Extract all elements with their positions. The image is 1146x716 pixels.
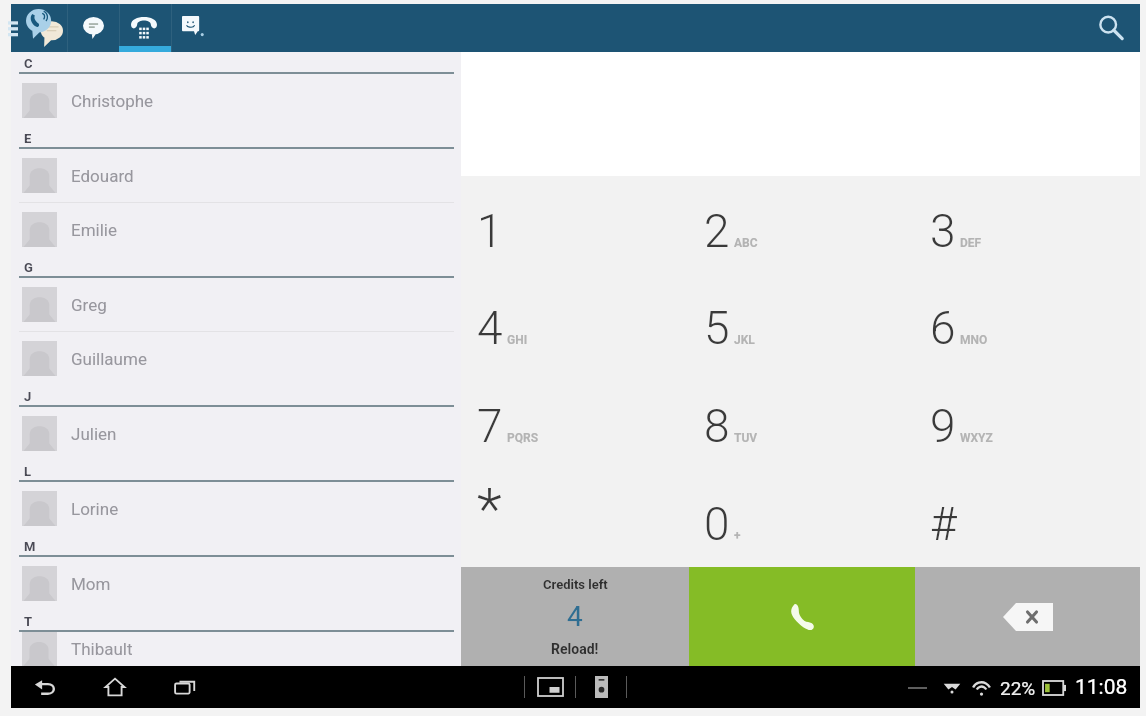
button[interactable]: Recents bbox=[165, 667, 205, 707]
button[interactable]: 1 bbox=[461, 176, 688, 273]
staticText: J bbox=[24, 389, 32, 404]
staticText: 2 bbox=[704, 204, 730, 258]
button[interactable]: 3 bbox=[914, 176, 1140, 273]
button[interactable]: Stickers bbox=[171, 4, 223, 52]
button[interactable]: Menu bbox=[11, 4, 21, 52]
staticText: 1 bbox=[477, 204, 503, 258]
button[interactable]: 0 bbox=[688, 469, 914, 567]
button[interactable]: Thibault bbox=[11, 632, 461, 666]
staticText: Guillaume bbox=[71, 349, 147, 369]
staticText: 22% bbox=[1000, 677, 1036, 699]
button[interactable]: * bbox=[461, 469, 688, 567]
button[interactable]: Call bbox=[689, 567, 915, 666]
staticText: Lorine bbox=[71, 499, 119, 519]
staticText: Greg bbox=[71, 295, 107, 315]
staticText: 9 bbox=[930, 399, 956, 453]
button[interactable]: 9 bbox=[914, 371, 1140, 469]
staticText: Thibault bbox=[71, 639, 133, 659]
staticText: C bbox=[24, 56, 33, 71]
staticText: L bbox=[24, 464, 32, 479]
staticText: Credits left bbox=[543, 577, 608, 592]
staticText: WXYZ bbox=[960, 431, 993, 445]
staticText: Mom bbox=[71, 574, 111, 594]
button[interactable]: Edouard bbox=[11, 149, 461, 202]
staticText: 7 bbox=[477, 399, 503, 453]
button[interactable]: Guillaume bbox=[11, 332, 461, 385]
staticText: Emilie bbox=[71, 220, 117, 240]
staticText: 0 bbox=[704, 497, 730, 551]
button[interactable]: Backspace bbox=[915, 567, 1140, 666]
staticText: PQRS bbox=[507, 431, 539, 445]
staticText: 6 bbox=[930, 301, 956, 355]
staticText: 4 bbox=[477, 301, 503, 355]
staticText: 5 bbox=[704, 301, 730, 355]
staticText: # bbox=[930, 497, 957, 551]
button[interactable]: Apps bbox=[587, 673, 615, 701]
button[interactable]: Keypad bbox=[119, 4, 171, 52]
button[interactable]: 2 bbox=[688, 176, 914, 273]
button[interactable]: Search bbox=[1082, 4, 1140, 52]
staticText: Julien bbox=[71, 424, 117, 444]
staticText: G bbox=[24, 260, 33, 275]
button[interactable]: Credits left bbox=[461, 567, 689, 666]
button[interactable]: Greg bbox=[11, 278, 461, 331]
button[interactable]: Back bbox=[25, 667, 65, 707]
button[interactable]: Messages bbox=[67, 4, 119, 52]
staticText: 11:08 bbox=[1075, 675, 1128, 700]
staticText: Edouard bbox=[71, 166, 134, 186]
button[interactable]: 4 bbox=[461, 273, 688, 371]
staticText: DEF bbox=[960, 236, 982, 250]
button[interactable]: Christophe bbox=[11, 74, 461, 127]
button[interactable]: Lorine bbox=[11, 482, 461, 535]
staticText: JKL bbox=[734, 333, 755, 347]
staticText: 8 bbox=[704, 399, 730, 453]
staticText: T bbox=[24, 614, 33, 629]
staticText: Christophe bbox=[71, 91, 154, 111]
staticText: GHI bbox=[507, 333, 528, 347]
staticText: MNO bbox=[960, 333, 988, 347]
staticText: Reload! bbox=[551, 641, 599, 657]
staticText: TUV bbox=[734, 431, 758, 445]
button[interactable]: Viber bbox=[21, 4, 67, 52]
staticText: 3 bbox=[930, 204, 956, 258]
button[interactable]: 8 bbox=[688, 371, 914, 469]
button[interactable]: Mom bbox=[11, 557, 461, 610]
staticText: 4 bbox=[567, 600, 583, 633]
staticText: * bbox=[477, 475, 502, 543]
button[interactable]: Screenshot bbox=[536, 673, 564, 701]
button[interactable]: # bbox=[914, 469, 1140, 567]
button[interactable]: 6 bbox=[914, 273, 1140, 371]
button[interactable]: 7 bbox=[461, 371, 688, 469]
button[interactable]: Emilie bbox=[11, 203, 461, 256]
button[interactable]: Home bbox=[95, 667, 135, 707]
button[interactable]: Julien bbox=[11, 407, 461, 460]
staticText: + bbox=[734, 529, 741, 543]
button[interactable]: 5 bbox=[688, 273, 914, 371]
staticText: M bbox=[24, 539, 36, 554]
staticText: ABC bbox=[734, 236, 758, 250]
staticText: E bbox=[24, 131, 32, 146]
